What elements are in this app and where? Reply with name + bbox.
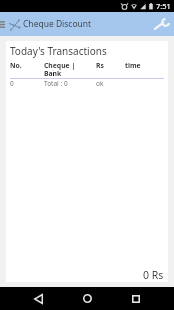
button[interactable]: App logo <box>8 14 20 34</box>
staticText: time <box>125 61 164 70</box>
staticText: No. <box>10 61 44 70</box>
staticText: ok <box>96 79 125 88</box>
button[interactable]: Home <box>76 287 99 310</box>
button[interactable]: 0 <box>10 79 164 88</box>
button[interactable]: Recent apps <box>124 287 147 310</box>
button[interactable]: Settings <box>151 14 171 34</box>
button[interactable]: Navigation drawer <box>0 14 8 34</box>
staticText: Cheque | Bank <box>44 61 96 78</box>
staticText: Cheque Discount <box>23 18 92 30</box>
staticText: Total : 0 <box>44 79 96 88</box>
button[interactable]: Back <box>27 287 50 310</box>
staticText: 0 Rs <box>143 268 164 282</box>
staticText: 0 <box>10 79 44 88</box>
staticText: Today's Transactions <box>10 44 107 58</box>
staticText: 7:51 <box>156 1 171 11</box>
staticText: Rs <box>96 61 125 70</box>
